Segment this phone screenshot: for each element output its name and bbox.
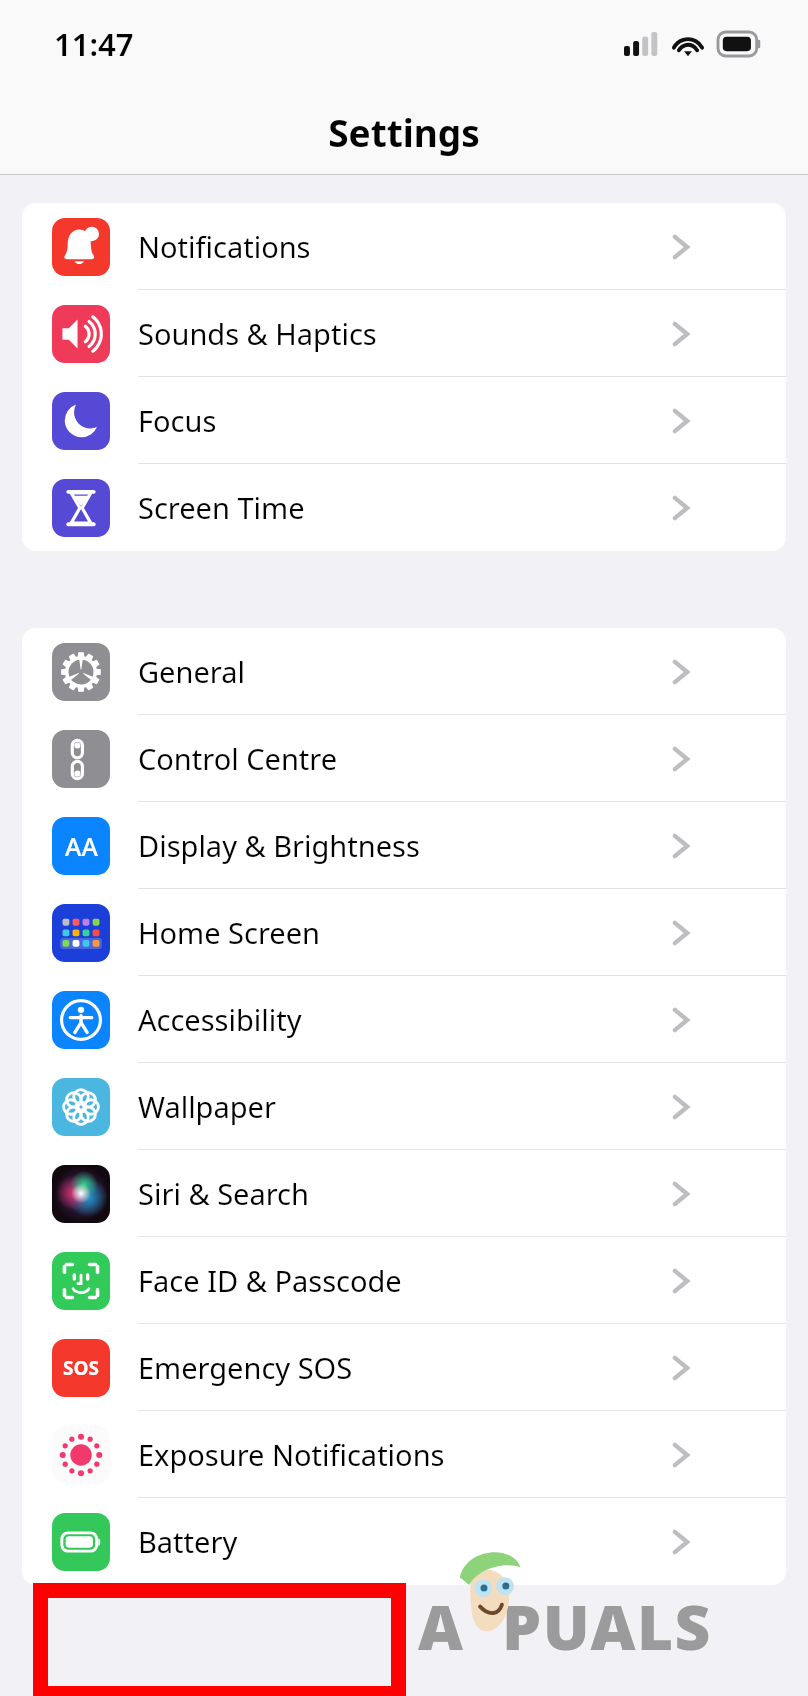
button[interactable]: Accessibility: [22, 976, 786, 1063]
button[interactable]: Control Centre: [22, 715, 786, 802]
button[interactable]: SOS: [22, 1324, 786, 1411]
button[interactable]: Home Screen: [22, 889, 786, 976]
staticText: Emergency SOS: [138, 1348, 667, 1387]
staticText: SOS: [63, 1355, 99, 1381]
staticText: Exposure Notifications: [138, 1435, 667, 1474]
staticText: Screen Time: [138, 488, 667, 527]
staticText: Display & Brightness: [138, 826, 667, 865]
staticText: General: [138, 652, 667, 691]
button[interactable]: Sounds & Haptics: [22, 290, 786, 377]
staticText: Home Screen: [138, 913, 667, 952]
staticText: Wallpaper: [138, 1087, 667, 1126]
staticText: Control Centre: [138, 739, 667, 778]
staticText: Notifications: [138, 227, 667, 266]
button[interactable]: Wallpaper: [22, 1063, 786, 1150]
staticText: Siri & Search: [138, 1174, 667, 1213]
button[interactable]: Screen Time: [22, 464, 786, 551]
staticText: Face ID & Passcode: [138, 1261, 667, 1300]
staticText: Focus: [138, 401, 667, 440]
button[interactable]: Siri & Search: [22, 1150, 786, 1237]
staticText: Battery: [138, 1522, 667, 1561]
button[interactable]: AA: [22, 802, 786, 889]
button[interactable]: Focus: [22, 377, 786, 464]
button[interactable]: Face ID & Passcode: [22, 1237, 786, 1324]
button[interactable]: General: [22, 628, 786, 715]
staticText: Accessibility: [138, 1000, 667, 1039]
staticText: Settings: [0, 107, 808, 157]
staticText: PUALS: [502, 1584, 712, 1668]
staticText: A: [418, 1584, 464, 1668]
button[interactable]: Battery: [22, 1498, 786, 1585]
staticText: Sounds & Haptics: [138, 314, 667, 353]
button[interactable]: Notifications: [22, 203, 786, 290]
staticText: AA: [65, 829, 98, 863]
staticText: 11:47: [54, 23, 134, 65]
button[interactable]: Exposure Notifications: [22, 1411, 786, 1498]
